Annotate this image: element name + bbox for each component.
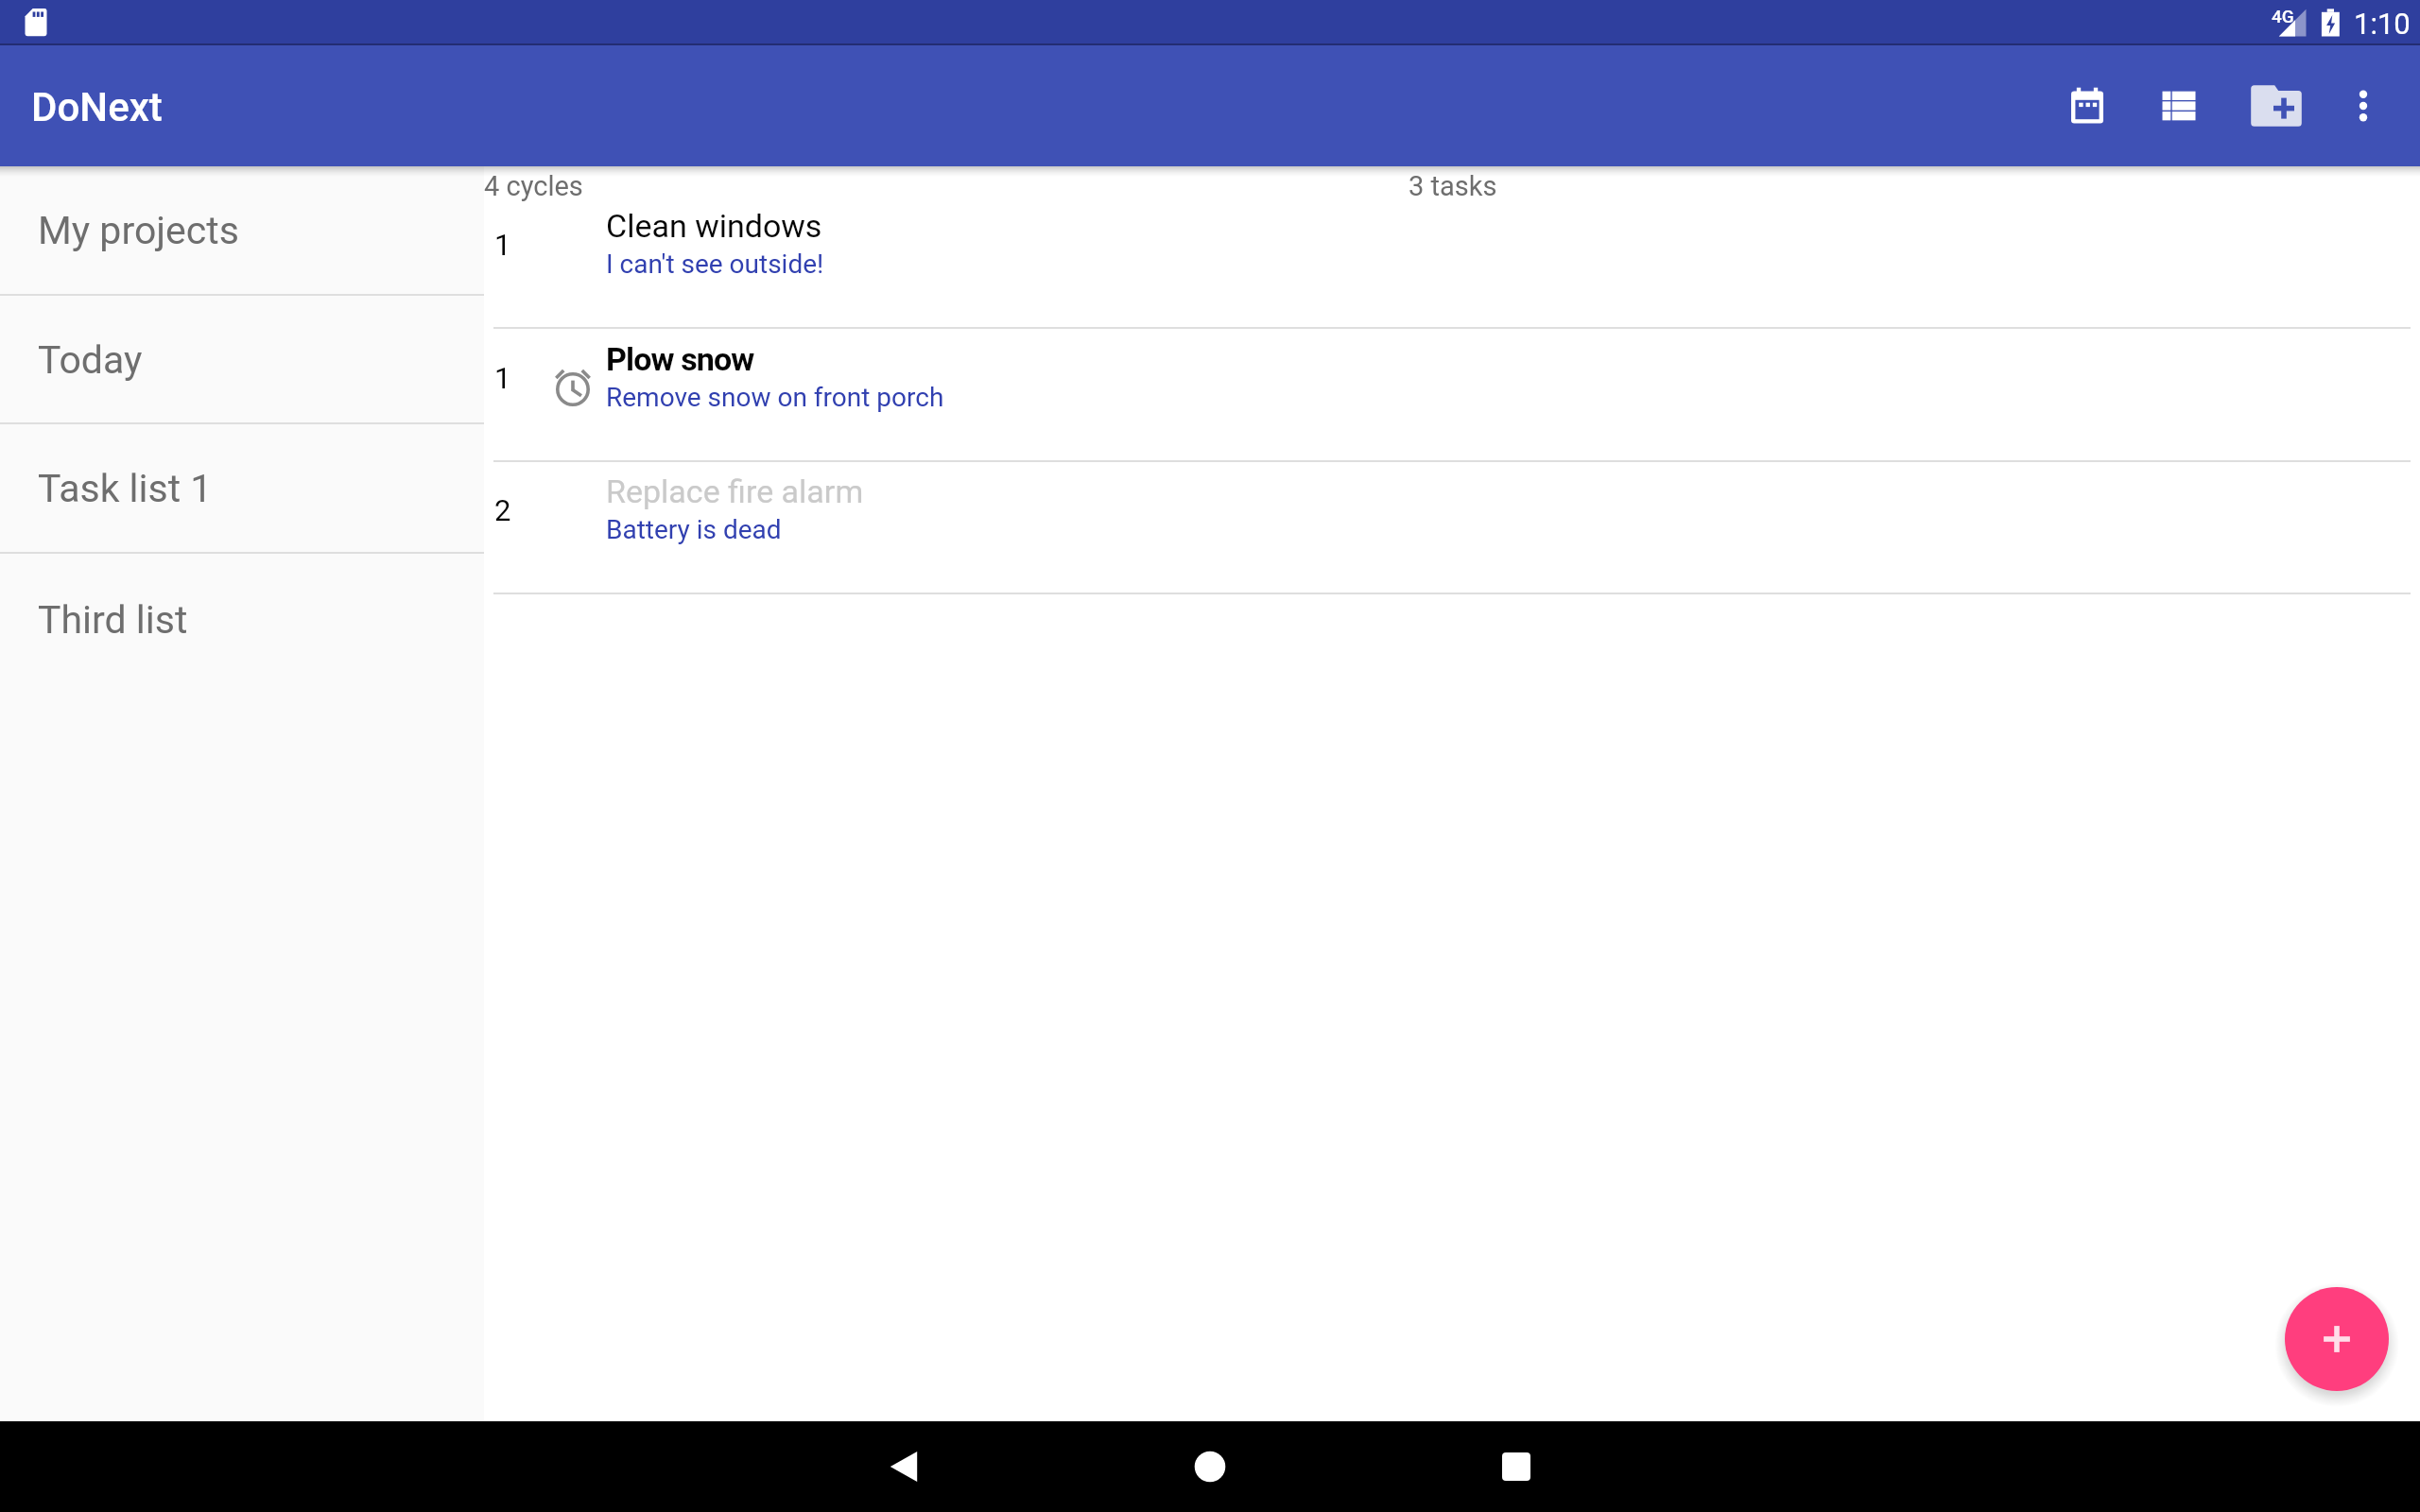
staticText: DoNext <box>31 84 163 130</box>
button[interactable]: Home <box>1165 1421 1255 1512</box>
button[interactable]: Recents <box>1471 1421 1562 1512</box>
button[interactable]: 1 <box>484 328 2420 460</box>
staticText: 4 cycles <box>484 170 583 202</box>
staticText: Remove snow on front porch <box>606 382 944 413</box>
staticText: Plow snow <box>606 340 754 378</box>
staticText: 4G <box>2272 6 2294 26</box>
staticText: 1 <box>494 361 511 395</box>
button[interactable]: More options <box>2318 60 2409 151</box>
staticText: 1:10 <box>2354 7 2411 41</box>
staticText: Task list 1 <box>38 466 213 511</box>
staticText: I can't see outside! <box>606 249 824 280</box>
staticText: Today <box>38 337 143 383</box>
button[interactable]: Third list <box>0 554 484 686</box>
button[interactable]: Lists <box>2134 60 2224 151</box>
button[interactable]: Today <box>0 296 484 423</box>
staticText: Battery is dead <box>606 514 782 545</box>
button[interactable]: Calendar <box>2042 60 2133 151</box>
button[interactable]: 1 <box>484 195 2420 327</box>
staticText: Replace fire alarm <box>606 472 864 510</box>
button[interactable]: New folder <box>2231 60 2322 151</box>
staticText: 3 tasks <box>1409 170 1497 202</box>
button[interactable]: Add task <box>2285 1287 2389 1391</box>
staticText: 1 <box>494 228 511 262</box>
button[interactable]: Task list 1 <box>0 422 484 554</box>
button[interactable]: My projects <box>0 166 484 294</box>
button[interactable]: Back <box>858 1421 949 1512</box>
staticText: 2 <box>494 493 511 527</box>
button[interactable]: 2 <box>484 460 2420 593</box>
staticText: My projects <box>38 208 239 253</box>
staticText: Third list <box>38 597 188 643</box>
staticText: Clean windows <box>606 207 822 245</box>
